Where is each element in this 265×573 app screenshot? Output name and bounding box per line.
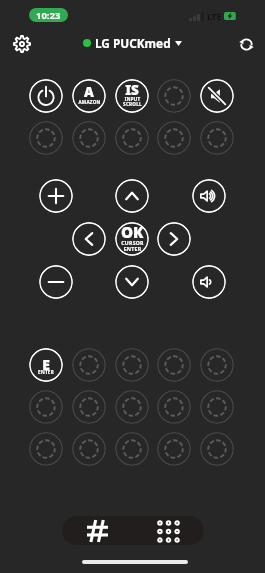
button[interactable]: Unassigned button [200, 121, 234, 155]
staticText: 10:23 [36, 9, 61, 22]
button[interactable]: Unassigned button [29, 390, 63, 424]
button[interactable]: Unassigned button [115, 348, 149, 382]
button[interactable]: Unassigned button [72, 432, 106, 466]
button[interactable]: Number pad [154, 517, 182, 545]
button[interactable]: Left [72, 222, 106, 256]
button[interactable]: Unassigned button [72, 348, 106, 382]
button[interactable]: Volume down [192, 265, 226, 299]
button[interactable]: Unassigned button [157, 390, 191, 424]
button[interactable]: Unassigned button [72, 390, 106, 424]
button[interactable]: Refresh [233, 31, 259, 57]
button[interactable]: Unassigned button [200, 390, 234, 424]
button[interactable]: Keypad [83, 516, 111, 545]
button[interactable]: Channel up [39, 179, 73, 213]
button[interactable]: E [29, 348, 63, 382]
staticText: A [84, 83, 94, 101]
staticText: LG PUCKmed [95, 35, 171, 51]
staticText: E [42, 355, 50, 374]
button[interactable]: LG PUCKmed [82, 34, 183, 52]
button[interactable]: IS [115, 79, 149, 113]
button[interactable]: OK [115, 222, 149, 256]
button[interactable]: Up [115, 179, 149, 213]
staticText: AMAZON [78, 99, 101, 105]
staticText: ENTER [38, 369, 54, 375]
button[interactable]: Unassigned button [115, 390, 149, 424]
button[interactable]: Unassigned button [157, 348, 191, 382]
button[interactable]: Unassigned button [72, 121, 106, 155]
button[interactable]: Right [157, 222, 191, 256]
button[interactable]: Unassigned button [157, 79, 191, 113]
button[interactable]: Unassigned button [157, 121, 191, 155]
button[interactable]: Settings [9, 31, 35, 57]
button[interactable]: Channel down [39, 265, 73, 299]
button[interactable]: Unassigned button [29, 121, 63, 155]
staticText: CURSOR ENTER [121, 239, 144, 252]
button[interactable]: Volume up [192, 179, 226, 213]
button[interactable]: Unassigned button [115, 432, 149, 466]
button[interactable]: Unassigned button [29, 432, 63, 466]
button[interactable]: Power [29, 79, 63, 113]
staticText: OK [121, 222, 144, 243]
button[interactable]: Unassigned button [200, 348, 234, 382]
button[interactable]: Unassigned button [157, 432, 191, 466]
staticText: LTE [207, 11, 222, 23]
staticText: INPUT SCROLL [123, 96, 142, 108]
button[interactable]: Mute [200, 79, 234, 113]
staticText: IS [125, 81, 139, 99]
button[interactable]: Unassigned button [115, 121, 149, 155]
button[interactable]: Unassigned button [200, 432, 234, 466]
button[interactable] [62, 516, 204, 545]
button[interactable]: Down [115, 265, 149, 299]
button[interactable]: A [72, 79, 106, 113]
